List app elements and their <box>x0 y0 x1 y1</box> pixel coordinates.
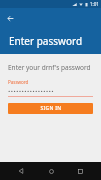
staticText: Password <box>8 79 29 85</box>
staticText: Enter your drnf's password <box>8 63 91 72</box>
staticText: 1:01 <box>90 1 99 7</box>
button[interactable]: SIGN IN <box>8 103 93 114</box>
staticText: Enter password <box>9 34 83 48</box>
button[interactable]: Home <box>43 163 59 179</box>
button[interactable]: Recent apps <box>72 163 88 179</box>
button[interactable]: Back <box>13 163 29 179</box>
button[interactable]: Back <box>3 11 17 25</box>
button[interactable] <box>8 88 93 94</box>
staticText: SIGN IN <box>40 105 62 112</box>
